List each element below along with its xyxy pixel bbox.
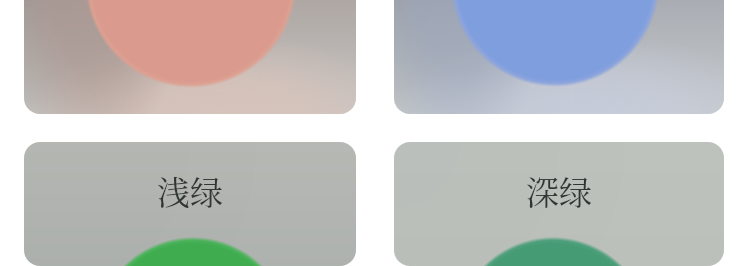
button[interactable]: 深绿 [394,142,724,266]
button[interactable]: 浅绿 [24,142,356,266]
button[interactable] [24,0,356,114]
staticText: 深绿 [526,167,592,214]
button[interactable] [394,0,724,114]
staticText: 浅绿 [157,167,223,214]
